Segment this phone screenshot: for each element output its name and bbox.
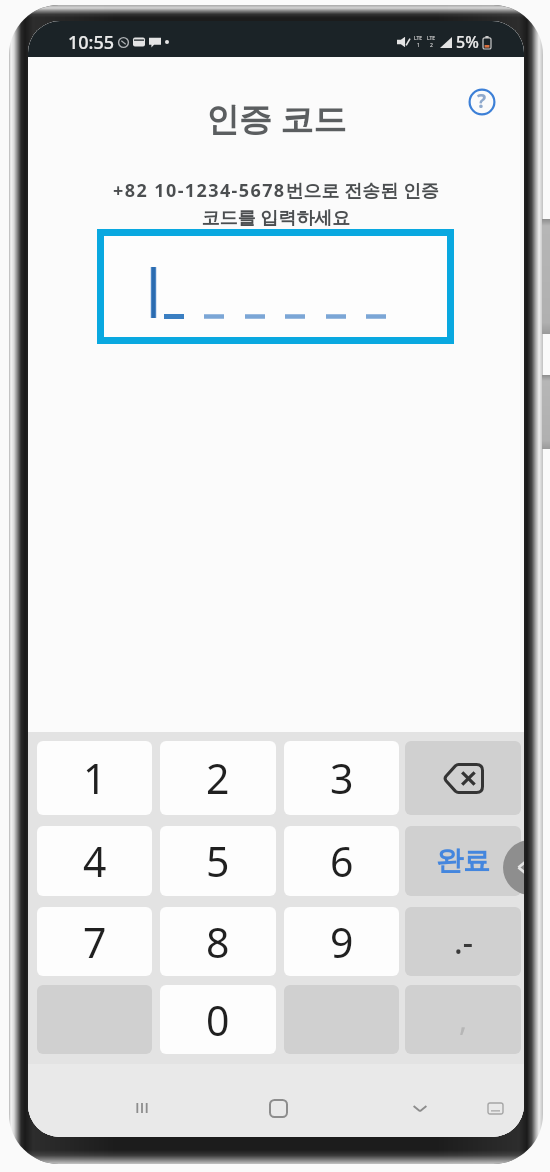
button[interactable]: 0 bbox=[160, 985, 276, 1054]
button[interactable]: 5 bbox=[160, 826, 276, 896]
button[interactable]: 2 bbox=[160, 741, 276, 815]
button[interactable]: 6 bbox=[284, 826, 399, 896]
button[interactable]: Back bbox=[398, 1086, 442, 1130]
staticText: , bbox=[459, 999, 468, 1040]
staticText: LTE bbox=[414, 35, 423, 42]
staticText: 3 bbox=[330, 750, 354, 806]
staticText: LTE bbox=[427, 35, 436, 42]
staticText: 2 bbox=[206, 750, 230, 806]
staticText: 10:55 bbox=[68, 30, 115, 55]
button[interactable]: 8 bbox=[160, 907, 276, 976]
staticText: +82 10-1234-5678번으로 전송된 인증 코드를 입력하세요 bbox=[113, 178, 439, 230]
staticText: 완료 bbox=[436, 844, 490, 878]
staticText: 9 bbox=[330, 914, 354, 970]
button[interactable]: Help bbox=[466, 86, 498, 118]
staticText: ? bbox=[477, 88, 487, 114]
staticText: .- bbox=[454, 920, 473, 964]
button[interactable]: Home bbox=[256, 1086, 300, 1130]
button[interactable]: 9 bbox=[284, 907, 399, 976]
button[interactable]: Edge panel bbox=[503, 840, 524, 895]
staticText: 1 bbox=[83, 750, 107, 806]
button[interactable]: Verification code input bbox=[104, 236, 447, 337]
button[interactable]: Done bbox=[405, 826, 521, 896]
staticText: 6 bbox=[330, 833, 354, 889]
button[interactable]: Symbols bbox=[405, 907, 521, 976]
button[interactable]: Keyboard bbox=[477, 1090, 513, 1126]
staticText: 0 bbox=[206, 992, 230, 1048]
staticText: 8 bbox=[206, 914, 230, 970]
button[interactable]: Backspace bbox=[405, 741, 521, 815]
button[interactable]: 3 bbox=[284, 741, 399, 815]
button[interactable]: Recent apps bbox=[120, 1086, 164, 1130]
staticText: 2 bbox=[430, 42, 433, 49]
staticText: 5 bbox=[206, 833, 230, 889]
staticText: 4 bbox=[83, 833, 107, 889]
staticText: 인증 코드 bbox=[206, 96, 347, 141]
staticText: 7 bbox=[83, 914, 107, 970]
button[interactable]: 7 bbox=[37, 907, 152, 976]
button[interactable]: 4 bbox=[37, 826, 152, 896]
staticText: 5% bbox=[456, 31, 479, 53]
staticText: 1 bbox=[417, 42, 420, 49]
button[interactable]: 1 bbox=[37, 741, 152, 815]
